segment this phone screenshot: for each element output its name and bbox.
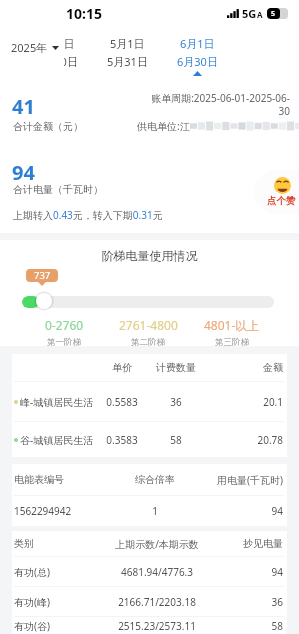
staticText: 类别 xyxy=(14,537,102,550)
staticText: 计费数量 xyxy=(144,361,208,374)
staticText: 第三阶梯 xyxy=(215,337,249,348)
staticText: 4681.94/4776.3 xyxy=(102,565,212,579)
staticText: 4月1日 xyxy=(40,36,75,51)
staticText: 0.5583 xyxy=(100,395,144,409)
staticText: 阶梯电量使用情况 xyxy=(0,248,299,263)
staticText: 电能表编号 xyxy=(14,473,117,486)
staticText: 6月30日 xyxy=(177,54,218,69)
staticText: 有功(总) xyxy=(14,565,102,579)
staticText: 综合倍率 xyxy=(117,473,193,486)
staticText: 第一阶梯 xyxy=(47,337,81,348)
staticText: 4月30日 xyxy=(37,54,78,69)
staticText: 2166.71/2203.18 xyxy=(102,595,212,609)
staticText: 账单周期:2025-06-01-2025-06- 30 xyxy=(137,91,290,118)
staticText: 94 xyxy=(12,159,35,186)
staticText: 用电量(千瓦时) xyxy=(193,473,283,487)
staticText: 5月31日 xyxy=(107,54,148,69)
staticText: 5月1日 xyxy=(110,36,145,51)
staticText: 2761-4800 xyxy=(119,317,178,333)
staticText: 1562294942 xyxy=(14,504,117,518)
staticText: 点个赞 xyxy=(267,195,296,207)
button[interactable]: 4月1日 xyxy=(22,36,92,71)
button[interactable]: 2025年 xyxy=(11,40,59,55)
staticText: 峰-城镇居民生活 xyxy=(20,395,94,409)
staticText: 20.78 xyxy=(208,433,283,447)
staticText: 合计金额（元） xyxy=(13,120,83,133)
staticText: 第二阶梯 xyxy=(131,337,165,348)
staticText: 单价 xyxy=(100,361,144,374)
staticText: 94 xyxy=(212,565,283,579)
staticText: 20.1 xyxy=(208,395,283,409)
staticText: 1 xyxy=(117,504,193,518)
staticText: 金额 xyxy=(208,361,283,374)
staticText: 抄见电量 xyxy=(212,537,283,550)
staticText: 上期转入0.43元，转入下期0.31元 xyxy=(13,208,163,222)
staticText: 5G xyxy=(242,6,257,21)
staticText: 供电单位:江 xyxy=(137,119,190,133)
staticText: 4801-以上 xyxy=(204,317,260,333)
staticText: 2515.23/2573.11 xyxy=(102,619,212,633)
staticText: 合计电量（千瓦时） xyxy=(13,183,103,196)
staticText: 0-2760 xyxy=(45,317,84,333)
staticText: 有功(谷) xyxy=(14,619,102,633)
staticText: 36 xyxy=(144,395,208,409)
staticText: A xyxy=(257,9,263,20)
staticText: 6月1日 xyxy=(180,36,215,51)
staticText: 737 xyxy=(34,269,51,282)
staticText: 58 xyxy=(212,619,283,633)
staticText: 58 xyxy=(144,433,208,447)
staticText: 5 xyxy=(271,9,276,19)
button[interactable]: 5月1日 xyxy=(92,36,162,71)
staticText: 2025年 xyxy=(11,40,48,55)
staticText: 36 xyxy=(212,595,283,609)
staticText: 上期示数/本期示数 xyxy=(102,537,212,551)
staticText: 10:15 xyxy=(66,4,102,23)
button[interactable]: 点个赞 xyxy=(254,170,299,214)
button[interactable]: 6月1日 xyxy=(162,36,232,76)
staticText: 0.3583 xyxy=(100,433,144,447)
staticText: 41 xyxy=(12,93,35,120)
staticText: 谷-城镇居民生活 xyxy=(20,433,94,447)
staticText: 有功(峰) xyxy=(14,595,102,609)
staticText: 94 xyxy=(193,504,283,518)
